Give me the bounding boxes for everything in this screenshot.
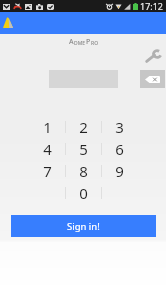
staticText: 6 [115,139,124,159]
staticText: P [86,37,91,47]
button[interactable]: 1 [30,116,65,138]
staticText: Sign in! [67,220,100,233]
staticText: 0 [79,183,88,203]
button[interactable]: 0 [66,182,101,204]
button[interactable]: 3 [102,116,137,138]
button[interactable]: Backspace [140,70,165,88]
staticText: DME [74,40,86,47]
staticText: 2 [79,117,88,137]
staticText: 4 [43,139,52,159]
button[interactable]: 6 [102,138,137,160]
button[interactable]: App logo [3,17,13,28]
staticText: 3 [115,117,124,137]
staticText: RO [91,40,99,47]
staticText: 8 [79,161,88,181]
button[interactable]: 5 [66,138,101,160]
button[interactable]: 7 [30,160,65,182]
button[interactable]: 9 [102,160,137,182]
button[interactable]: Settings [145,50,162,63]
staticText: A [69,37,74,47]
button[interactable]: 2 [66,116,101,138]
staticText: 9 [115,161,124,181]
staticText: 7 [43,161,52,181]
staticText: 5 [79,139,88,159]
staticText: 17:12 [140,0,164,12]
button[interactable]: 8 [66,160,101,182]
staticText: 1 [43,117,52,137]
button[interactable]: Sign in! [11,215,156,237]
button[interactable]: 4 [30,138,65,160]
